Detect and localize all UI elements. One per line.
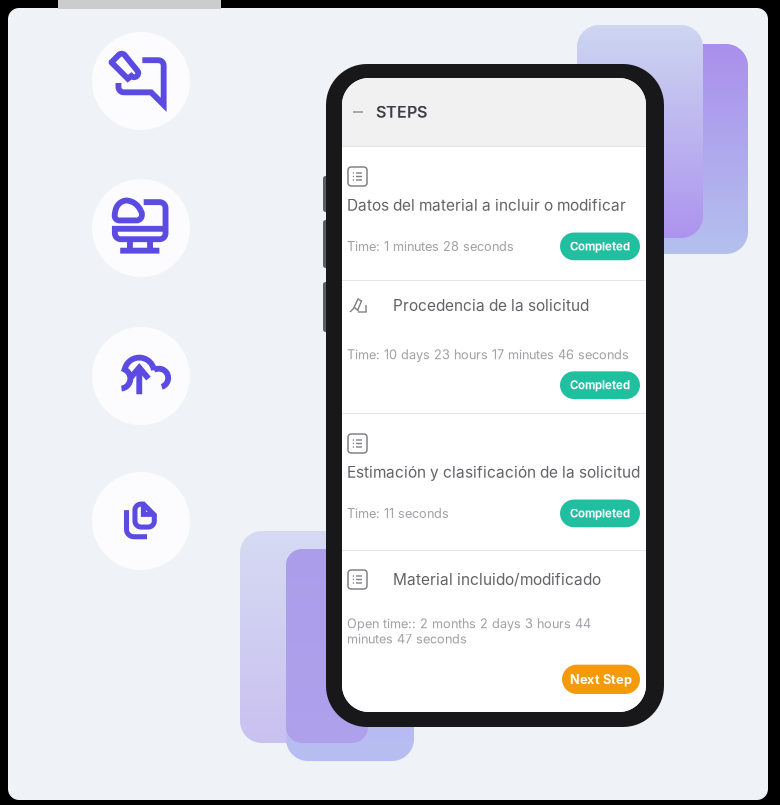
- staticText: Procedencia de la solicitud: [393, 296, 589, 315]
- button[interactable]: Remote desktop: [92, 179, 190, 277]
- staticText: Completed: [570, 507, 630, 520]
- button[interactable]: Datos del material a incluir o modificar: [342, 147, 646, 280]
- button[interactable]: Upload to cloud: [92, 327, 190, 425]
- staticText: Completed: [570, 240, 630, 253]
- staticText: Time: 10 days 23 hours 17 minutes 46 sec…: [347, 347, 629, 362]
- staticText: Time: 11 seconds: [347, 506, 449, 521]
- button[interactable]: Copy documents: [92, 472, 190, 570]
- button[interactable]: Edit request: [92, 32, 190, 130]
- staticText: Open time:: 2 months 2 days 3 hours 44 m…: [347, 616, 591, 647]
- button[interactable]: Collapse: [349, 103, 367, 121]
- button[interactable]: Material incluido/modificado: [342, 551, 646, 713]
- staticText: Datos del material a incluir o modificar: [347, 196, 626, 215]
- staticText: Time: 1 minutes 28 seconds: [347, 239, 514, 254]
- button[interactable]: Next Step: [562, 665, 640, 694]
- button[interactable]: Estimación y clasificación de la solicit…: [342, 414, 646, 550]
- staticText: Completed: [570, 378, 630, 392]
- button[interactable]: Procedencia de la solicitud: [342, 281, 646, 413]
- staticText: STEPS: [376, 102, 427, 122]
- staticText: Material incluido/modificado: [393, 570, 601, 589]
- staticText: Estimación y clasificación de la solicit…: [347, 463, 640, 482]
- staticText: Next Step: [570, 672, 632, 687]
